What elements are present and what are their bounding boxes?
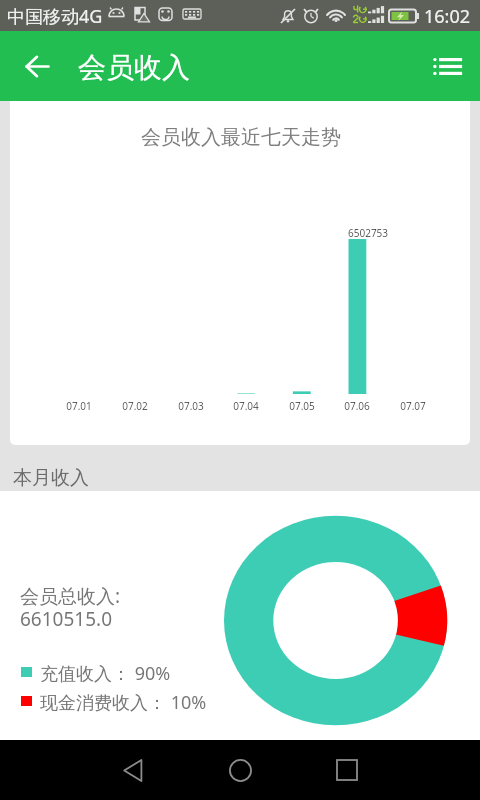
staticText: 6502753 [348,226,389,240]
staticText: 16:02 [424,4,471,29]
staticText: 07.03 [178,399,204,413]
staticText: 07.01 [66,399,92,413]
button[interactable]: Recents [317,740,377,800]
staticText: 充值收入： 90% [40,661,171,686]
staticText: 会员总收入: [20,583,121,609]
staticText: 07.05 [289,399,315,413]
staticText: 会员收入 [78,50,190,85]
staticText: 07.06 [344,399,370,413]
button[interactable]: Back [103,740,163,800]
button[interactable]: Home [210,740,270,800]
button[interactable]: Menu [419,31,475,101]
staticText: 现金消费收入： 10% [40,690,207,715]
staticText: 07.04 [233,399,259,413]
button[interactable]: Back [0,31,74,101]
staticText: 中国移动4G [7,4,103,29]
staticText: 本月收入 [13,466,89,490]
staticText: 07.07 [400,399,426,413]
staticText: 会员收入最近七天走势 [141,125,341,150]
staticText: 6610515.0 [20,606,113,632]
staticText: 07.02 [122,399,148,413]
